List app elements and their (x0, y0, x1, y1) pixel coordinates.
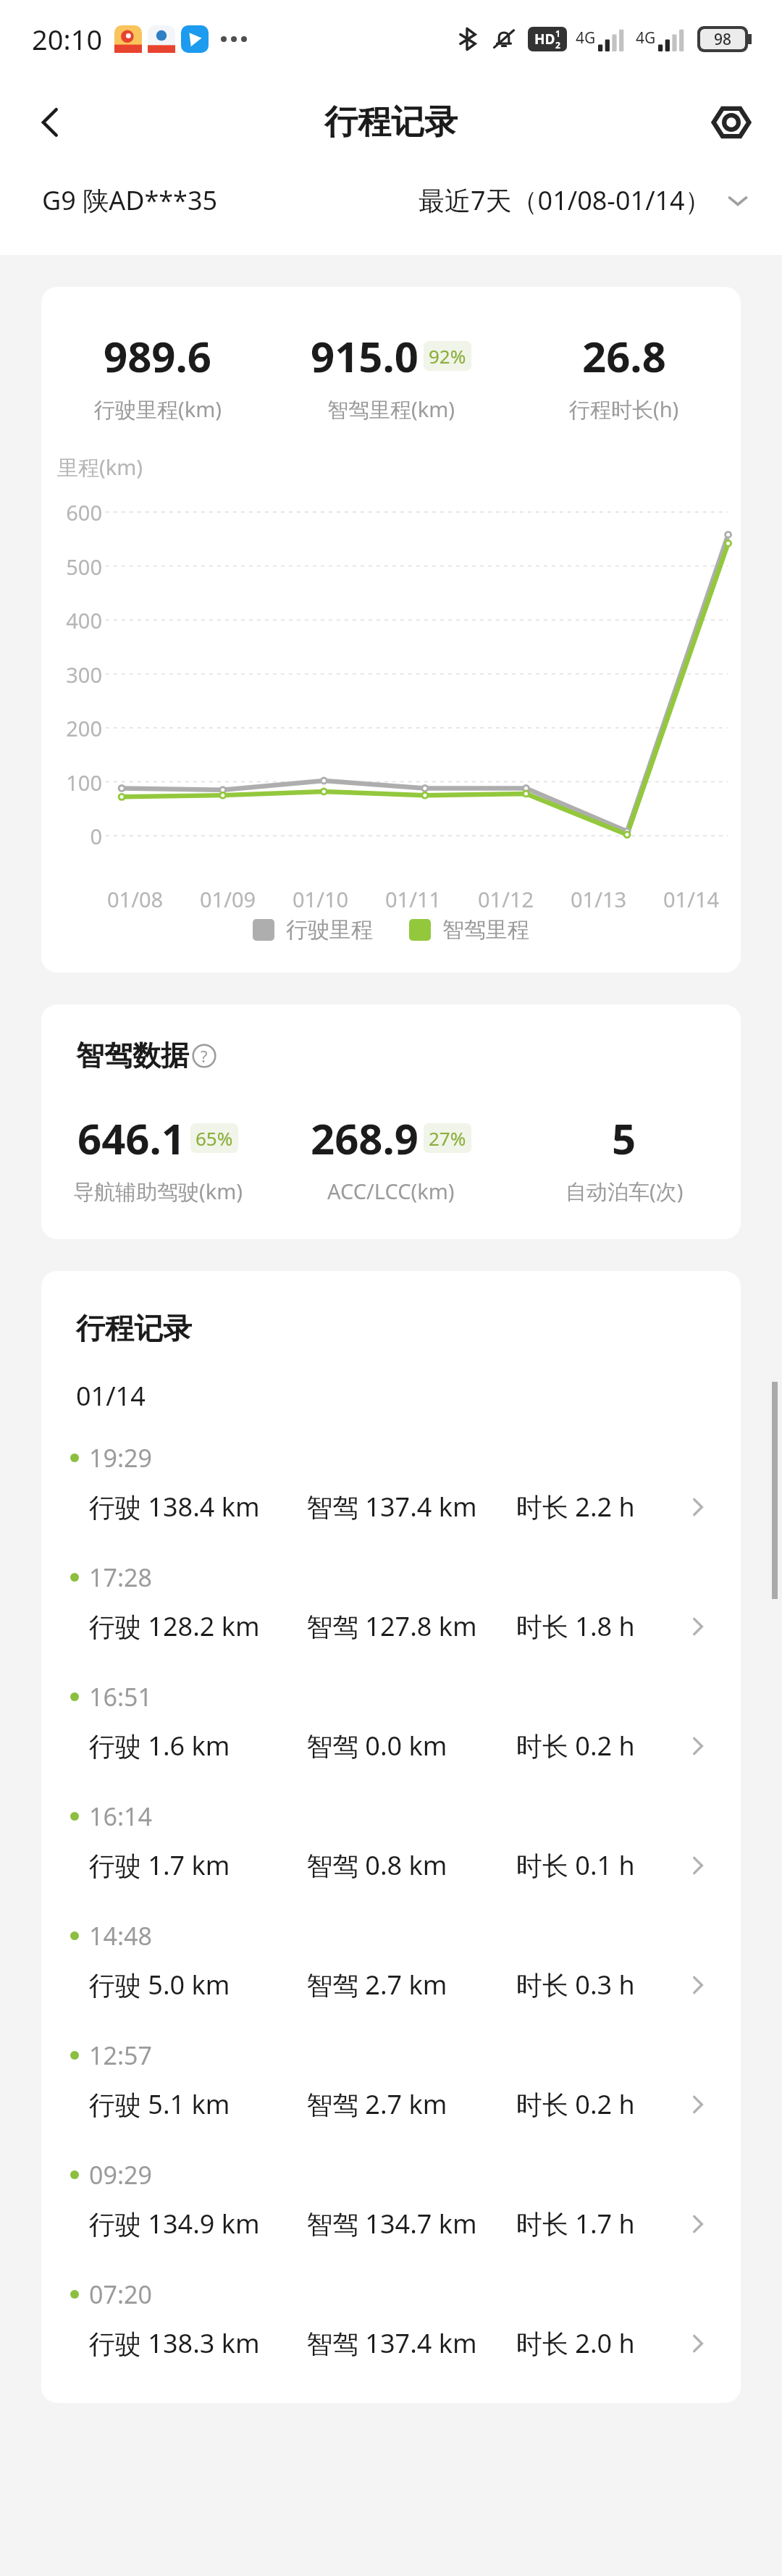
staticText: 行驶 138.4 km (89, 1489, 260, 1524)
staticText: 300 (41, 660, 102, 689)
staticText: 行程记录 (324, 101, 458, 143)
staticText: 500 (41, 553, 102, 581)
staticText: 01/09 (200, 885, 256, 913)
staticText: 智驾 127.8 km (306, 1608, 477, 1644)
staticText: 01/14 (76, 1378, 146, 1414)
staticText: 行驶 1.6 km (89, 1728, 230, 1763)
staticText: 行驶 1.7 km (89, 1847, 230, 1883)
staticText: 600 (41, 498, 102, 526)
staticText: 时长 2.2 h (516, 1489, 635, 1524)
button[interactable]: 07:20 (41, 2262, 741, 2381)
staticText: 4G (576, 28, 596, 49)
staticText: 100 (41, 768, 102, 797)
staticText: 17:28 (89, 1561, 152, 1594)
staticText: 200 (41, 714, 102, 742)
button[interactable]: Back (13, 85, 88, 160)
other: Bluetooth (455, 27, 480, 51)
button[interactable]: 16:14 (41, 1784, 741, 1903)
staticText: 26.8 (582, 327, 666, 385)
button[interactable]: 14:48 (41, 1903, 741, 2023)
staticText: 01/10 (293, 885, 349, 913)
staticText: 智驾 134.7 km (306, 2206, 477, 2241)
staticText: 行程记录 (76, 1310, 192, 1346)
staticText: 16:51 (89, 1680, 152, 1713)
staticText: ACC/LCC(km) (327, 1177, 455, 1205)
staticText: 最近7天（01/08-01/14） (419, 182, 711, 218)
staticText: 时长 0.2 h (516, 1728, 635, 1763)
staticText: 时长 2.0 h (516, 2325, 635, 2361)
staticText: 4G (636, 28, 656, 49)
staticText: 智驾 0.8 km (306, 1847, 447, 1883)
staticText: 0 (41, 822, 102, 850)
staticText: 14:48 (89, 1919, 152, 1952)
button[interactable]: 最近7天（01/08-01/14） (419, 182, 750, 218)
staticText: 01/08 (107, 885, 164, 913)
staticText: 时长 0.3 h (516, 1967, 635, 2002)
staticText: 时长 1.8 h (516, 1608, 635, 1644)
staticText: 98 (714, 29, 732, 49)
staticText: 12:57 (89, 2039, 152, 2072)
button[interactable]: Settings (697, 88, 766, 157)
staticText: ? (201, 1045, 208, 1067)
staticText: 行驶里程 (286, 916, 373, 944)
staticText: 646.1 (77, 1109, 186, 1167)
staticText: 989.6 (104, 327, 212, 385)
staticText: 2 (555, 39, 560, 51)
staticText: 行程时长(h) (569, 395, 679, 424)
staticText: 时长 1.7 h (516, 2206, 635, 2241)
staticText: 09:29 (89, 2158, 152, 2191)
button[interactable]: 19:29 (41, 1425, 741, 1545)
staticText: 5 (612, 1109, 636, 1167)
staticText: 01/12 (478, 885, 534, 913)
staticText: 智驾 137.4 km (306, 1489, 477, 1524)
staticText: 01/11 (385, 885, 442, 913)
staticText: 行驶 134.9 km (89, 2206, 260, 2241)
button[interactable]: 09:29 (41, 2142, 741, 2262)
other: Silent (492, 27, 516, 51)
staticText: 时长 0.2 h (516, 2086, 635, 2122)
staticText: 里程(km) (57, 453, 143, 482)
staticText: 07:20 (89, 2278, 152, 2311)
staticText: 智驾里程 (442, 916, 529, 944)
button[interactable]: 17:28 (41, 1545, 741, 1664)
staticText: 27% (429, 1125, 466, 1151)
button[interactable]: 16:51 (41, 1664, 741, 1784)
staticText: G9 陕AD***35 (42, 182, 218, 218)
staticText: 自动泊车(次) (566, 1177, 684, 1206)
staticText: 915.0 (311, 327, 419, 385)
staticText: HD (534, 30, 555, 49)
staticText: 01/14 (663, 885, 720, 913)
staticText: 时长 0.1 h (516, 1847, 635, 1883)
staticText: 400 (41, 606, 102, 634)
staticText: 20:10 (32, 20, 103, 58)
button[interactable]: 12:57 (41, 2023, 741, 2142)
staticText: 智驾 0.0 km (306, 1728, 447, 1763)
staticText: 智驾 2.7 km (306, 2086, 447, 2122)
staticText: 行驶 138.3 km (89, 2325, 260, 2361)
staticText: 92% (429, 343, 466, 369)
staticText: 19:29 (89, 1441, 152, 1474)
staticText: 行驶里程(km) (94, 395, 222, 424)
staticText: 导航辅助驾驶(km) (73, 1177, 243, 1206)
staticText: 智驾里程(km) (327, 395, 455, 424)
staticText: 65% (195, 1125, 233, 1151)
staticText: 行驶 5.1 km (89, 2086, 230, 2122)
staticText: 16:14 (89, 1800, 152, 1833)
staticText: 智驾数据 (76, 1038, 189, 1073)
button[interactable]: Help (192, 1044, 216, 1068)
staticText: 行驶 5.0 km (89, 1967, 230, 2002)
staticText: 268.9 (311, 1109, 419, 1167)
staticText: 01/13 (571, 885, 627, 913)
staticText: 智驾 2.7 km (306, 1967, 447, 2002)
staticText: 行驶 128.2 km (89, 1608, 260, 1644)
staticText: 智驾 137.4 km (306, 2325, 477, 2361)
staticText: 1 (555, 28, 560, 39)
